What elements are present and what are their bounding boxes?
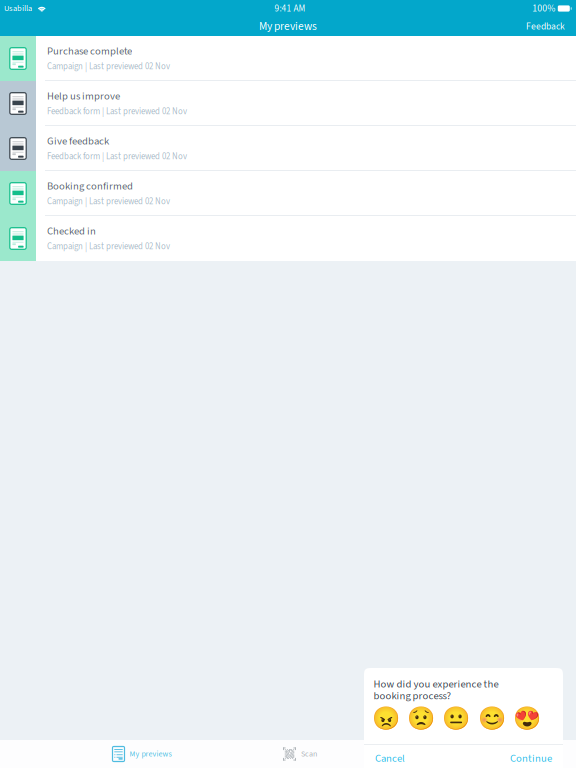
staticText: 😊 (478, 705, 506, 731)
staticText: Give feedback (47, 133, 109, 149)
button[interactable]: Help us improve (0, 81, 576, 126)
staticText: Booking confirmed (47, 178, 133, 194)
staticText: My previews (259, 18, 317, 35)
staticText: Cancel (375, 751, 405, 766)
button[interactable]: Booking confirmed (0, 171, 576, 216)
staticText: Usabilla (4, 2, 32, 14)
button[interactable]: Scan (266, 740, 334, 768)
staticText: Campaign | Last previewed 02 Nov (47, 60, 170, 73)
staticText: 😍 (513, 705, 541, 731)
staticText: Campaign | Last previewed 02 Nov (47, 240, 170, 253)
staticText: 😟 (407, 705, 435, 731)
staticText: Feedback (526, 20, 565, 33)
staticText: Campaign | Last previewed 02 Nov (47, 195, 170, 208)
staticText: Feedback form | Last previewed 02 Nov (47, 105, 187, 118)
staticText: Feedback form | Last previewed 02 Nov (47, 150, 187, 163)
button[interactable]: Give feedback (0, 126, 576, 171)
staticText: Help us improve (47, 88, 120, 104)
staticText: Purchase complete (47, 43, 132, 59)
button[interactable]: Checked in (0, 216, 576, 261)
staticText: Scan (301, 748, 317, 760)
button[interactable]: Cancel (364, 745, 416, 768)
button[interactable]: Feedback (515, 16, 576, 37)
staticText: 😠 (371, 705, 399, 731)
staticText: My previews (129, 748, 171, 760)
staticText: Continue (510, 751, 552, 766)
button[interactable]: Continue (499, 745, 563, 768)
button[interactable]: Purchase complete (0, 36, 576, 81)
staticText: How did you experience the (373, 676, 498, 692)
staticText: booking process? (373, 688, 451, 704)
button[interactable]: My previews (92, 740, 192, 768)
staticText: 9:41 AM (274, 2, 305, 15)
staticText: 😐 (442, 705, 470, 731)
staticText: 100% (532, 1, 555, 16)
staticText: Checked in (47, 223, 96, 239)
